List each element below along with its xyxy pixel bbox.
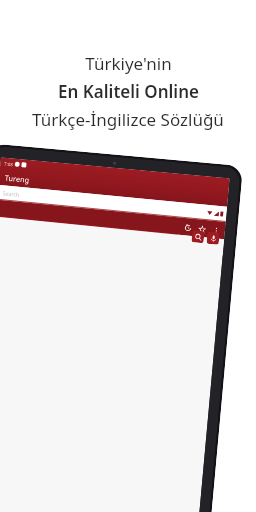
button[interactable]: More options bbox=[210, 225, 221, 236]
staticText: 7:08 bbox=[4, 161, 13, 167]
button[interactable]: Search history bbox=[182, 222, 193, 233]
button[interactable]: Voice search bbox=[206, 231, 220, 245]
other: Status icons bbox=[207, 210, 224, 217]
staticText: En Kaliteli Online bbox=[58, 80, 199, 103]
button[interactable]: Search bbox=[191, 230, 205, 243]
staticText: Tureng bbox=[4, 173, 30, 185]
staticText: Türkiye'nin bbox=[85, 52, 172, 75]
staticText: Türkçe-İngilizce Sözlüğü bbox=[32, 108, 224, 131]
staticText: Search bbox=[2, 189, 20, 198]
button[interactable]: Favorites bbox=[196, 223, 207, 234]
